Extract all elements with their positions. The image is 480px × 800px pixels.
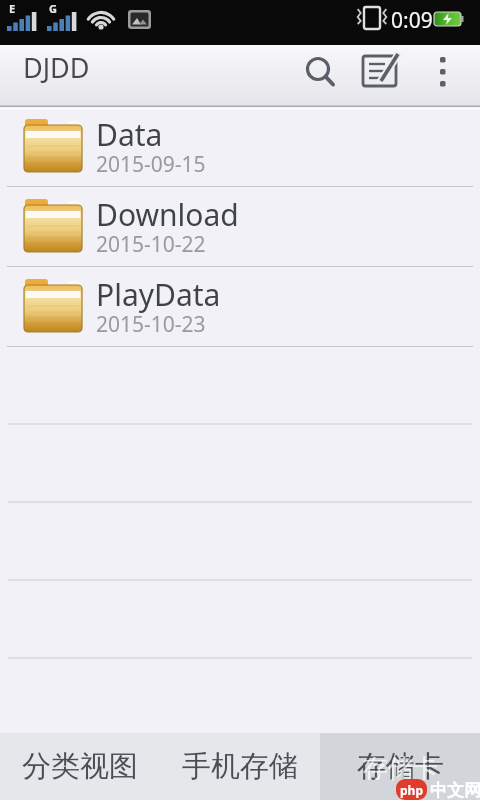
button[interactable]: Data — [0, 107, 480, 186]
staticText: 中文网 — [430, 780, 480, 800]
staticText: PlayData — [96, 274, 221, 315]
staticText: DJDD — [23, 49, 90, 86]
button[interactable] — [374, 45, 432, 107]
staticText: Data — [96, 114, 163, 155]
staticText: 分类视图 — [22, 748, 138, 785]
button[interactable]: 分类视图 — [0, 733, 160, 800]
button[interactable]: Download — [0, 187, 480, 266]
button[interactable]: PlayData — [0, 267, 480, 346]
staticText: Download — [96, 194, 239, 235]
staticText: 2015-10-22 — [96, 230, 206, 259]
button[interactable]: 存储卡 — [320, 733, 480, 800]
button[interactable] — [432, 45, 480, 107]
staticText: 存储卡 — [363, 753, 438, 784]
staticText: G — [49, 1, 57, 16]
staticText: 手机存储 — [182, 748, 298, 785]
staticText: E — [9, 1, 16, 16]
staticText: 存储卡 — [357, 748, 444, 785]
staticText: php — [400, 782, 423, 798]
button[interactable]: 手机存储 — [160, 733, 320, 800]
staticText: 0:09 — [391, 6, 433, 35]
staticText: 2015-09-15 — [96, 150, 206, 179]
button[interactable] — [320, 45, 374, 107]
staticText: 2015-10-23 — [96, 310, 206, 339]
